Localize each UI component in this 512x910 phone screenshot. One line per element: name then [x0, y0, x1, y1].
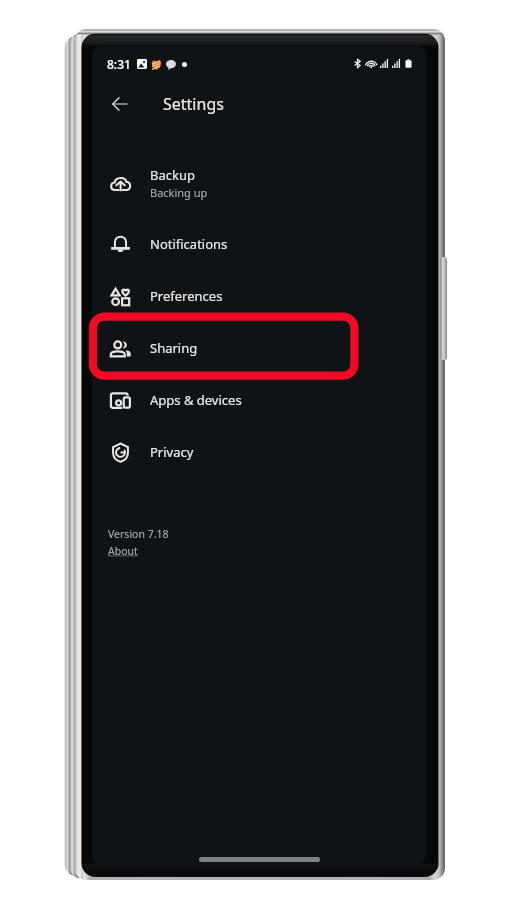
staticText: Apps & devices	[150, 391, 242, 409]
staticText: Sharing	[150, 339, 198, 357]
staticText: About	[108, 544, 138, 558]
button[interactable]: Backup	[92, 148, 426, 218]
staticText: 8:31	[107, 56, 131, 72]
button[interactable]: Sharing	[92, 322, 426, 374]
staticText: Settings	[163, 93, 224, 115]
button[interactable]: Notifications	[92, 218, 426, 270]
button[interactable]: Apps & devices	[92, 374, 426, 426]
staticText: Privacy	[150, 443, 194, 461]
staticText: Notifications	[150, 235, 228, 253]
staticText: Version 7.18	[108, 527, 169, 541]
button[interactable]: Back	[103, 87, 137, 121]
button[interactable]: Preferences	[92, 270, 426, 322]
button[interactable]: Privacy	[92, 426, 426, 478]
staticText: Backup	[150, 166, 195, 184]
staticText: Backing up	[150, 185, 208, 200]
staticText: Preferences	[150, 287, 223, 305]
button[interactable]: About	[108, 544, 138, 558]
